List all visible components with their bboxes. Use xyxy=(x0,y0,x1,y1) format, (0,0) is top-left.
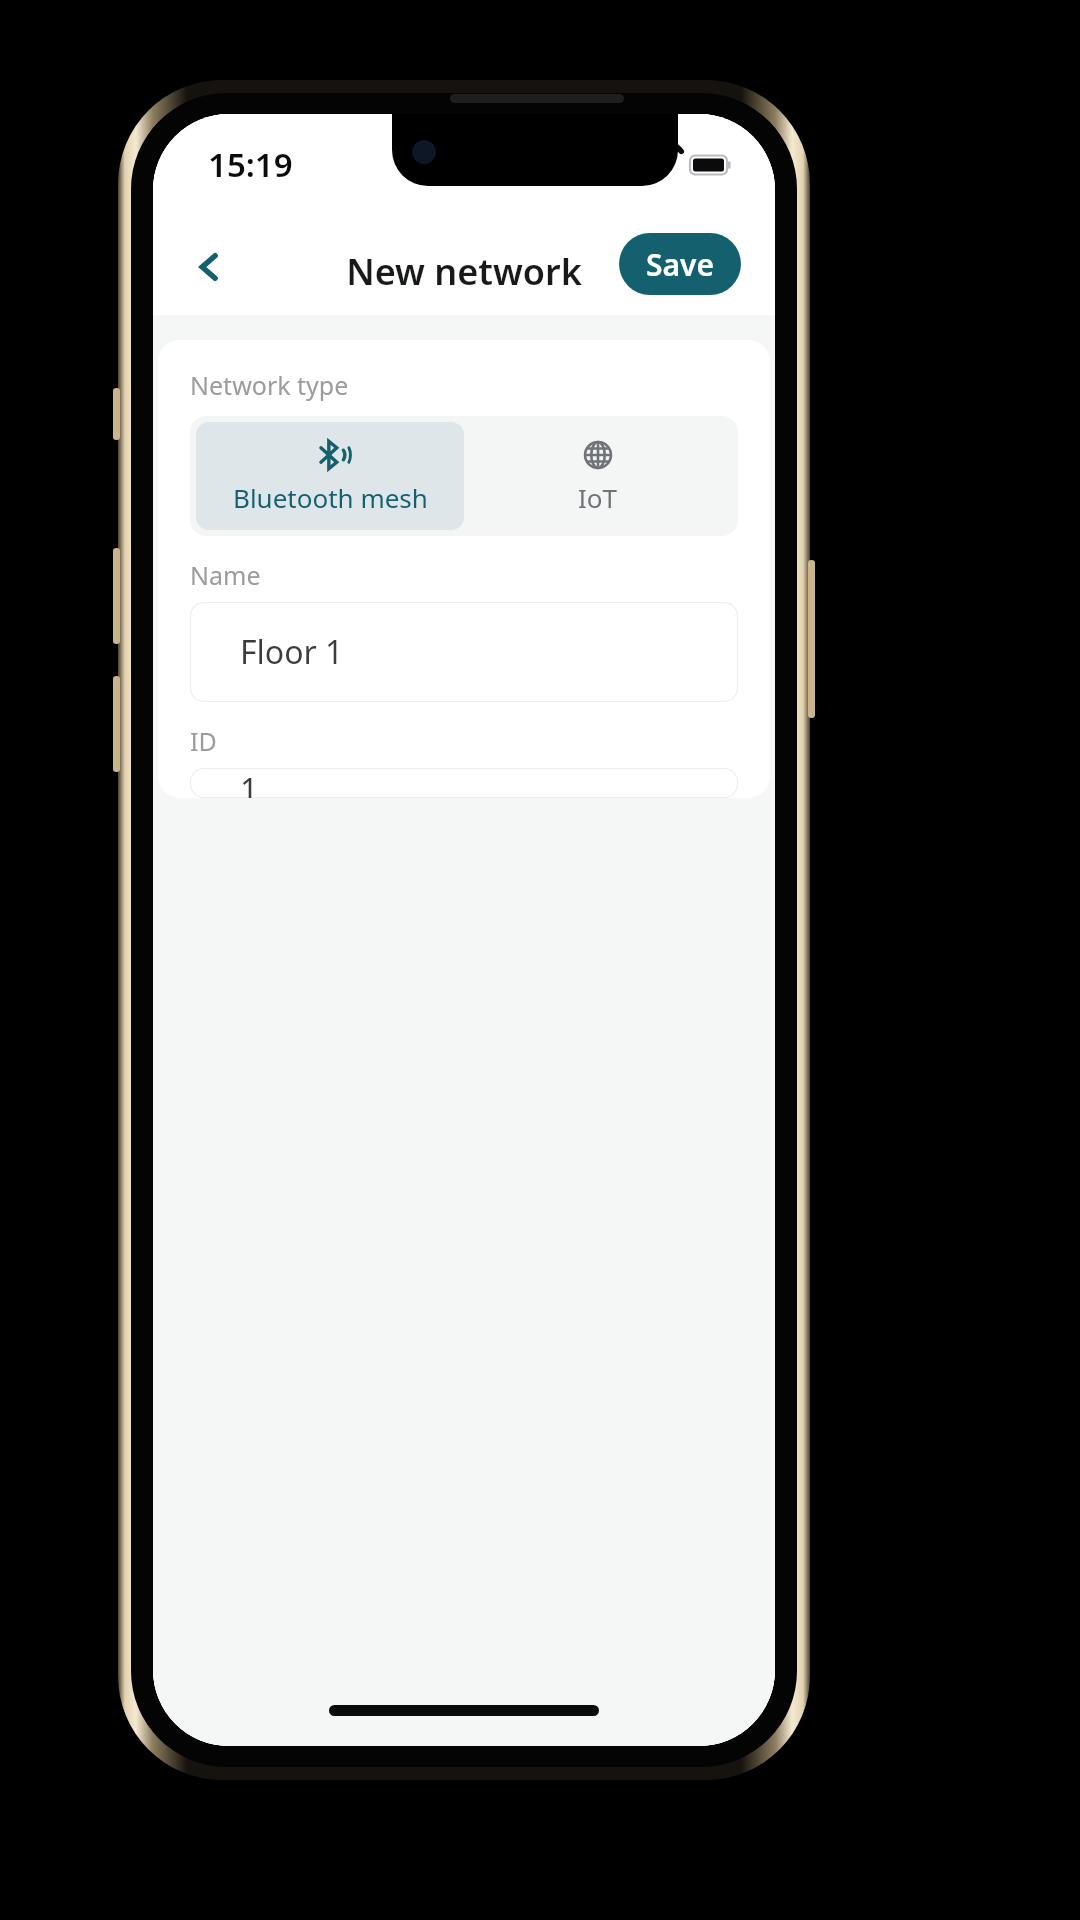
button[interactable]: Save xyxy=(619,233,741,295)
button[interactable]: IoT xyxy=(464,422,732,530)
staticText: New network xyxy=(153,247,775,296)
staticText: Name xyxy=(190,558,261,592)
button[interactable]: Back xyxy=(173,231,245,303)
staticText: IoT xyxy=(578,480,618,515)
staticText: Network type xyxy=(190,368,349,402)
staticText: Floor 1 xyxy=(240,630,344,674)
staticText: 15:19 xyxy=(208,142,293,187)
button[interactable]: 1 xyxy=(190,768,738,798)
staticText: Bluetooth mesh xyxy=(233,480,428,515)
staticText: Save xyxy=(646,244,715,285)
button[interactable]: Bluetooth mesh xyxy=(196,422,464,530)
button[interactable]: Floor 1 xyxy=(190,602,738,702)
staticText: ID xyxy=(190,724,217,758)
staticText: 1 xyxy=(240,768,259,798)
